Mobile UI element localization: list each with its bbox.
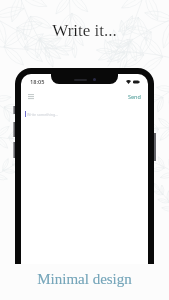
button[interactable]: Menu	[28, 92, 38, 100]
staticText: Write it...	[0, 21, 169, 40]
staticText: Send	[128, 93, 141, 100]
button[interactable]: Send	[127, 92, 141, 100]
staticText: Write something...	[27, 112, 59, 117]
staticText: 18:05	[30, 78, 45, 86]
staticText: Minimal design	[0, 271, 169, 288]
